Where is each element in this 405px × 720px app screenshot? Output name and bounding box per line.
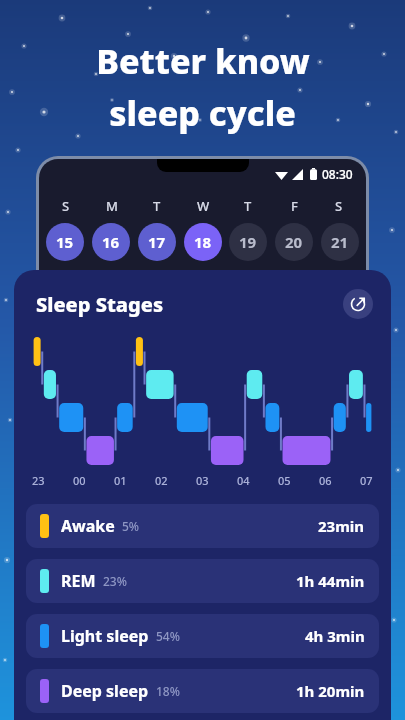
staticText: 18%	[156, 683, 180, 699]
staticText: 16	[102, 232, 120, 252]
button[interactable]: 16	[92, 223, 130, 261]
staticText: 03	[196, 473, 209, 488]
staticText: Light sleep	[61, 625, 149, 647]
staticText: 23min	[318, 516, 365, 536]
button[interactable]: Share	[343, 289, 373, 319]
staticText: W	[197, 197, 210, 215]
staticText: 15	[56, 232, 74, 252]
staticText: 04	[237, 473, 250, 488]
staticText: 1h 20min	[296, 681, 365, 701]
staticText: Sleep Stages	[36, 291, 164, 318]
staticText: 02	[155, 473, 168, 488]
staticText: T	[244, 197, 252, 215]
staticText: 01	[114, 473, 127, 488]
button[interactable]: 18	[184, 223, 222, 261]
staticText: Better know	[96, 38, 310, 84]
staticText: Deep sleep	[61, 680, 149, 702]
staticText: 23%	[103, 573, 127, 589]
staticText: 20	[285, 232, 303, 252]
button[interactable]: 20	[275, 223, 313, 261]
staticText: sleep cycle	[109, 90, 296, 136]
staticText: F	[291, 197, 298, 215]
staticText: S	[335, 197, 343, 215]
staticText: 23	[32, 473, 45, 488]
staticText: 07	[360, 473, 373, 488]
staticText: T	[153, 197, 161, 215]
staticText: 17	[148, 232, 166, 252]
button[interactable]: 19	[229, 223, 267, 261]
staticText: 18	[194, 232, 212, 252]
staticText: 4h 3min	[305, 626, 365, 646]
staticText: 08:30	[322, 166, 353, 182]
button[interactable]: Awake	[26, 504, 379, 548]
button[interactable]: 21	[321, 223, 359, 261]
staticText: M	[106, 197, 118, 215]
staticText: 19	[239, 232, 257, 252]
staticText: Awake	[61, 515, 115, 537]
button[interactable]: Light sleep	[26, 614, 379, 658]
staticText: S	[62, 197, 70, 215]
staticText: 1h 44min	[296, 571, 365, 591]
staticText: 5%	[122, 518, 140, 534]
staticText: 21	[331, 232, 349, 252]
button[interactable]: 15	[46, 223, 84, 261]
button[interactable]: 17	[138, 223, 176, 261]
staticText: 05	[278, 473, 291, 488]
staticText: 00	[73, 473, 86, 488]
staticText: 54%	[156, 628, 180, 644]
button[interactable]: Deep sleep	[26, 669, 379, 713]
staticText: 06	[319, 473, 332, 488]
staticText: REM	[61, 570, 96, 592]
button[interactable]: REM	[26, 559, 379, 603]
